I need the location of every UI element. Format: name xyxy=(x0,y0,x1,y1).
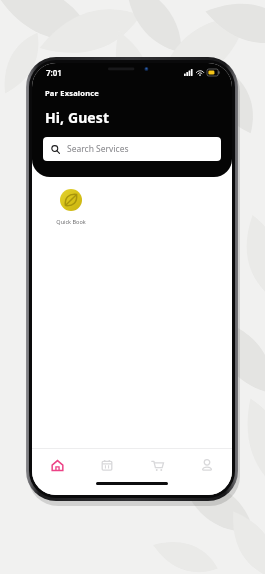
staticText: Hi, Guest xyxy=(45,108,110,127)
button[interactable]: Bookings xyxy=(82,449,132,481)
button[interactable]: Cart xyxy=(132,449,182,481)
staticText: 7:01 xyxy=(46,67,62,78)
button[interactable]: Profile xyxy=(182,449,232,481)
button[interactable]: Home xyxy=(32,449,82,481)
button[interactable]: Search Services xyxy=(43,137,221,161)
staticText: Par Exsalonce xyxy=(45,88,99,98)
button[interactable]: Quick Book xyxy=(47,189,95,225)
staticText: Search Services xyxy=(67,143,129,155)
staticText: Quick Book xyxy=(56,218,86,225)
